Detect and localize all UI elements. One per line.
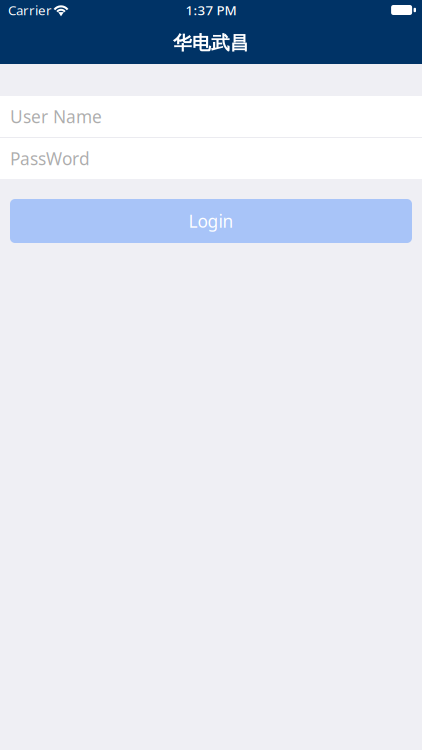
staticText: Login — [188, 209, 233, 232]
staticText: 1:37 PM — [185, 1, 236, 19]
staticText: 华电武昌 — [173, 31, 249, 54]
staticText: PassWord — [10, 147, 90, 170]
staticText: Carrier — [8, 1, 52, 19]
button[interactable]: Login — [10, 199, 412, 243]
button[interactable]: PassWord — [0, 138, 422, 179]
button[interactable]: User Name — [0, 96, 422, 137]
staticText: User Name — [10, 105, 102, 128]
